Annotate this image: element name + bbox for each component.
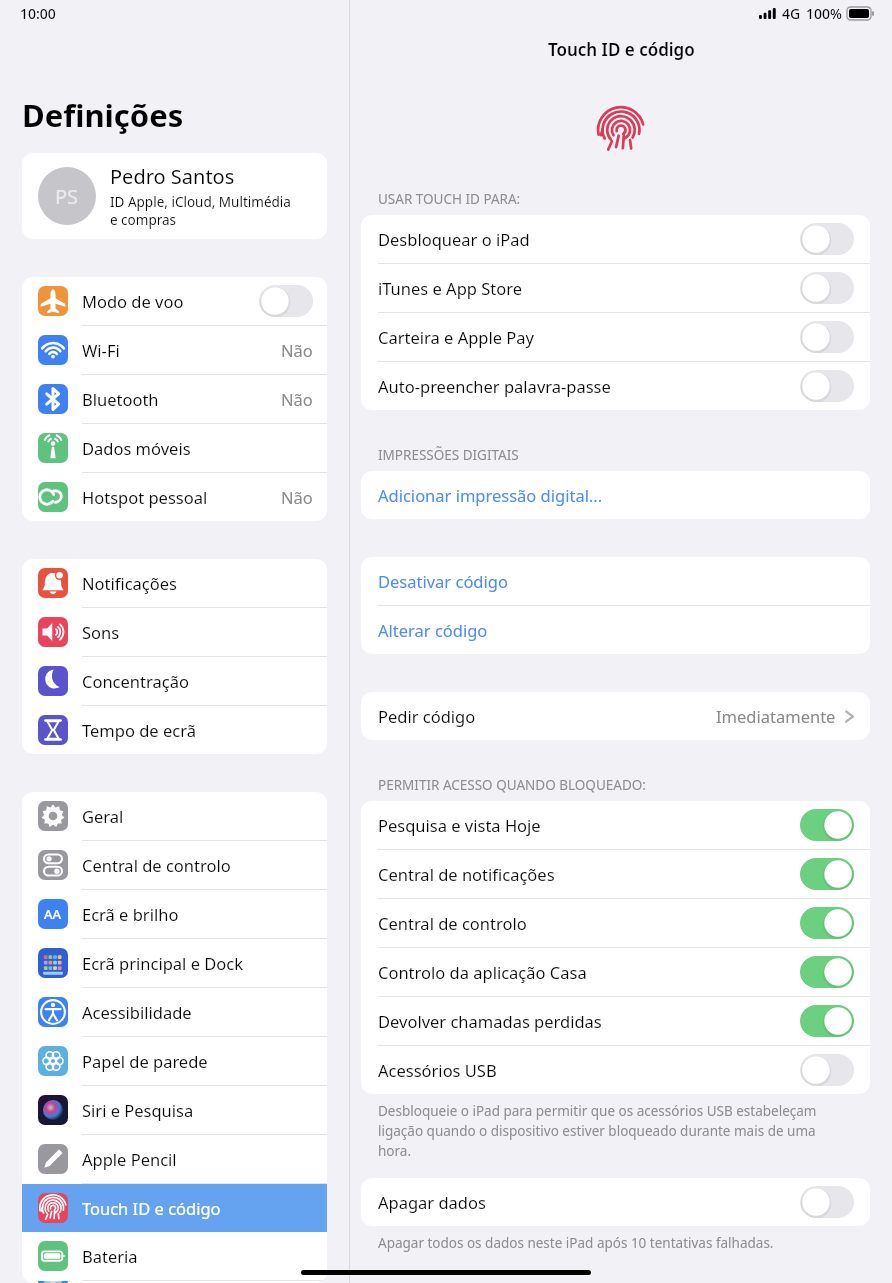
staticText: Desbloqueie o iPad para permitir que os … [378,1102,844,1160]
staticText: USAR TOUCH ID PARA: [378,190,521,208]
staticText: Modo de voo [82,290,259,312]
staticText: Sons [82,621,313,643]
staticText: Acessórios USB [378,1059,800,1081]
staticText: Ecrã principal e Dock [82,952,313,974]
button[interactable]: Notificações [22,559,327,607]
button[interactable]: Siri e Pesquisa [22,1086,327,1134]
staticText: Notificações [82,572,313,594]
staticText: Papel de parede [82,1050,313,1072]
staticText: ID Apple, iCloud, Multimédia e compras [110,193,291,229]
staticText: Auto-preencher palavra-passe [378,375,800,397]
staticText: Central de controlo [378,912,800,934]
button[interactable]: Controlo da aplicação Casa [800,956,854,988]
staticText: 4G [782,4,801,23]
button[interactable]: Apple Pencil [22,1135,327,1183]
button[interactable]: Controlo da aplicação Casa [361,948,870,996]
staticText: Wi-Fi [82,339,281,361]
button[interactable]: Central de controlo [361,899,870,947]
button[interactable]: Desativar código [361,557,870,605]
staticText: iTunes e App Store [378,277,800,299]
button[interactable]: Tempo de ecrã [22,706,327,754]
button[interactable]: AA [22,890,327,938]
staticText: Touch ID e código [548,38,695,61]
button[interactable]: Wi-Fi [22,326,327,374]
button[interactable]: PS [22,153,327,239]
staticText: Bluetooth [82,388,281,410]
staticText: 100% [806,4,842,23]
button[interactable]: Pesquisa e vista Hoje [800,809,854,841]
button[interactable]: Concentração [22,657,327,705]
staticText: IMPRESSÕES DIGITAIS [378,446,519,464]
staticText: Apagar todos os dados neste iPad após 10… [378,1234,774,1252]
button[interactable]: iTunes e App Store [800,272,854,304]
button[interactable]: Devolver chamadas perdidas [800,1005,854,1037]
staticText: Não [281,486,313,508]
button[interactable]: Desbloquear o iPad [361,215,870,263]
staticText: Tempo de ecrã [82,719,313,741]
staticText: PERMITIR ACESSO QUANDO BLOQUEADO: [378,776,646,794]
button[interactable]: Central de notificações [361,850,870,898]
button[interactable]: Auto-preencher palavra-passe [800,370,854,402]
button[interactable]: Acessórios USB [361,1046,870,1094]
staticText: Ecrã e brilho [82,903,313,925]
staticText: Bateria [82,1245,313,1267]
button[interactable]: Modo de voo [22,277,327,325]
button[interactable]: Touch ID e código [22,1184,327,1232]
button[interactable]: Ecrã principal e Dock [22,939,327,987]
button[interactable]: Apagar dados [361,1178,870,1226]
button[interactable]: Central de controlo [800,907,854,939]
staticText: Pedir código [378,705,716,727]
staticText: Não [281,388,313,410]
button[interactable]: Geral [22,792,327,840]
button[interactable]: Apagar dados [800,1186,854,1218]
staticText: Imediatamente [716,705,836,727]
staticText: Desativar código [378,570,854,592]
staticText: Pesquisa e vista Hoje [378,814,800,836]
staticText: Acessibilidade [82,1001,313,1023]
button[interactable]: Papel de parede [22,1037,327,1085]
staticText: Central de notificações [378,863,800,885]
staticText: AA [44,905,62,923]
staticText: Carteira e Apple Pay [378,326,800,348]
staticText: Touch ID e código [82,1197,313,1219]
staticText: 10:00 [20,4,56,23]
button[interactable]: Carteira e Apple Pay [800,321,854,353]
button[interactable]: Alterar código [361,606,870,654]
button[interactable]: Privacidade [22,1281,327,1283]
staticText: Definições [22,94,184,136]
button[interactable]: Auto-preencher palavra-passe [361,362,870,410]
button[interactable]: Sons [22,608,327,656]
button[interactable]: Modo de voo [259,285,313,317]
staticText: Adicionar impressão digital... [378,484,854,506]
staticText: Não [281,339,313,361]
staticText: PS [55,183,79,210]
staticText: Geral [82,805,313,827]
button[interactable]: Hotspot pessoal [22,473,327,521]
button[interactable]: Adicionar impressão digital... [361,471,870,519]
staticText: Central de controlo [82,854,313,876]
button[interactable]: Devolver chamadas perdidas [361,997,870,1045]
staticText: Alterar código [378,619,854,641]
staticText: Devolver chamadas perdidas [378,1010,800,1032]
staticText: Concentração [82,670,313,692]
staticText: Apple Pencil [82,1148,313,1170]
button[interactable]: Central de controlo [22,841,327,889]
button[interactable]: Acessórios USB [800,1054,854,1086]
staticText: Controlo da aplicação Casa [378,961,800,983]
button[interactable]: Dados móveis [22,424,327,472]
button[interactable]: Bluetooth [22,375,327,423]
button[interactable]: Carteira e Apple Pay [361,313,870,361]
staticText: Apagar dados [378,1191,800,1213]
staticText: Dados móveis [82,437,313,459]
button[interactable]: iTunes e App Store [361,264,870,312]
staticText: Siri e Pesquisa [82,1099,313,1121]
button[interactable]: Acessibilidade [22,988,327,1036]
button[interactable]: Desbloquear o iPad [800,223,854,255]
button[interactable]: Central de notificações [800,858,854,890]
button[interactable]: Bateria [22,1232,327,1280]
button[interactable]: Pedir código [361,692,870,740]
staticText: Hotspot pessoal [82,486,281,508]
staticText: Pedro Santos [110,163,235,190]
button[interactable]: Pesquisa e vista Hoje [361,801,870,849]
